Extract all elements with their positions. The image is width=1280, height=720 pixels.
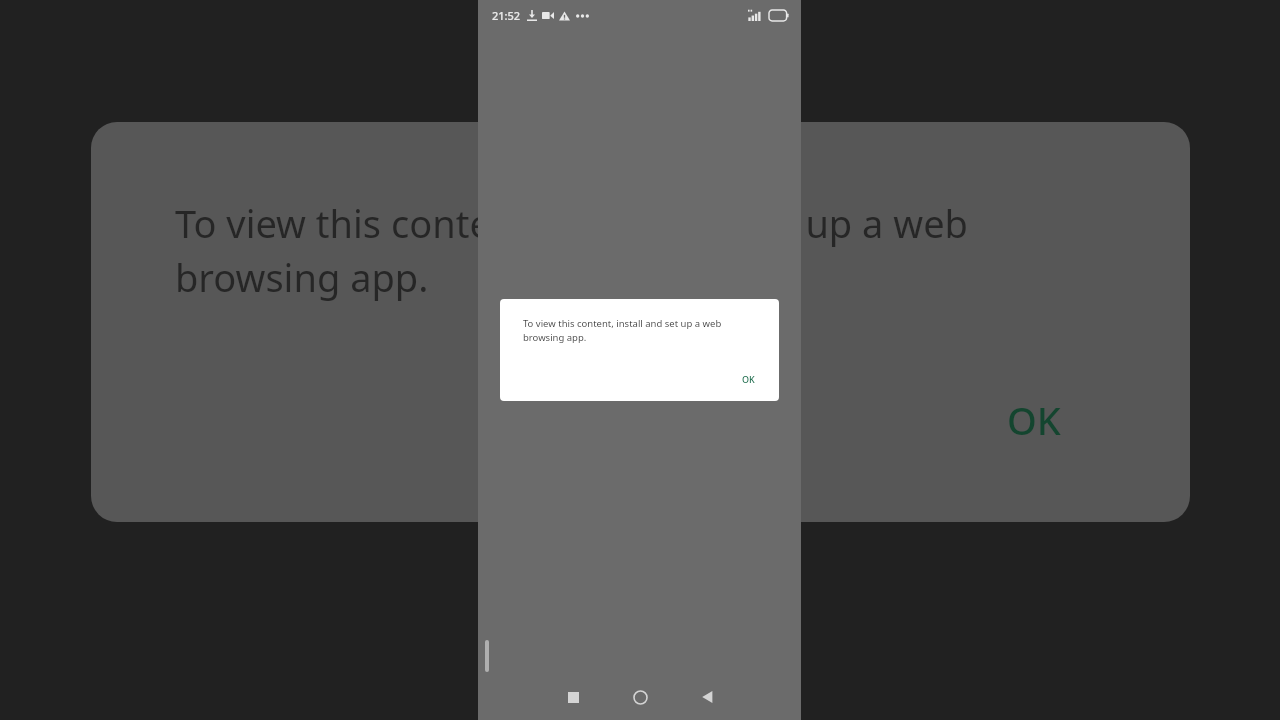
staticText: To view this content, install and set up… [523, 317, 755, 343]
button[interactable]: Recent apps [546, 674, 600, 720]
button[interactable]: Home [613, 674, 667, 720]
staticText: 21:52 [492, 8, 521, 23]
button[interactable]: Back [680, 674, 734, 720]
button[interactable]: OK [734, 369, 763, 389]
staticText: OK [742, 373, 755, 385]
staticText: browsing app. [175, 251, 429, 303]
staticText: To view this content, install and set up… [175, 197, 968, 249]
staticText: OK [1007, 394, 1061, 446]
